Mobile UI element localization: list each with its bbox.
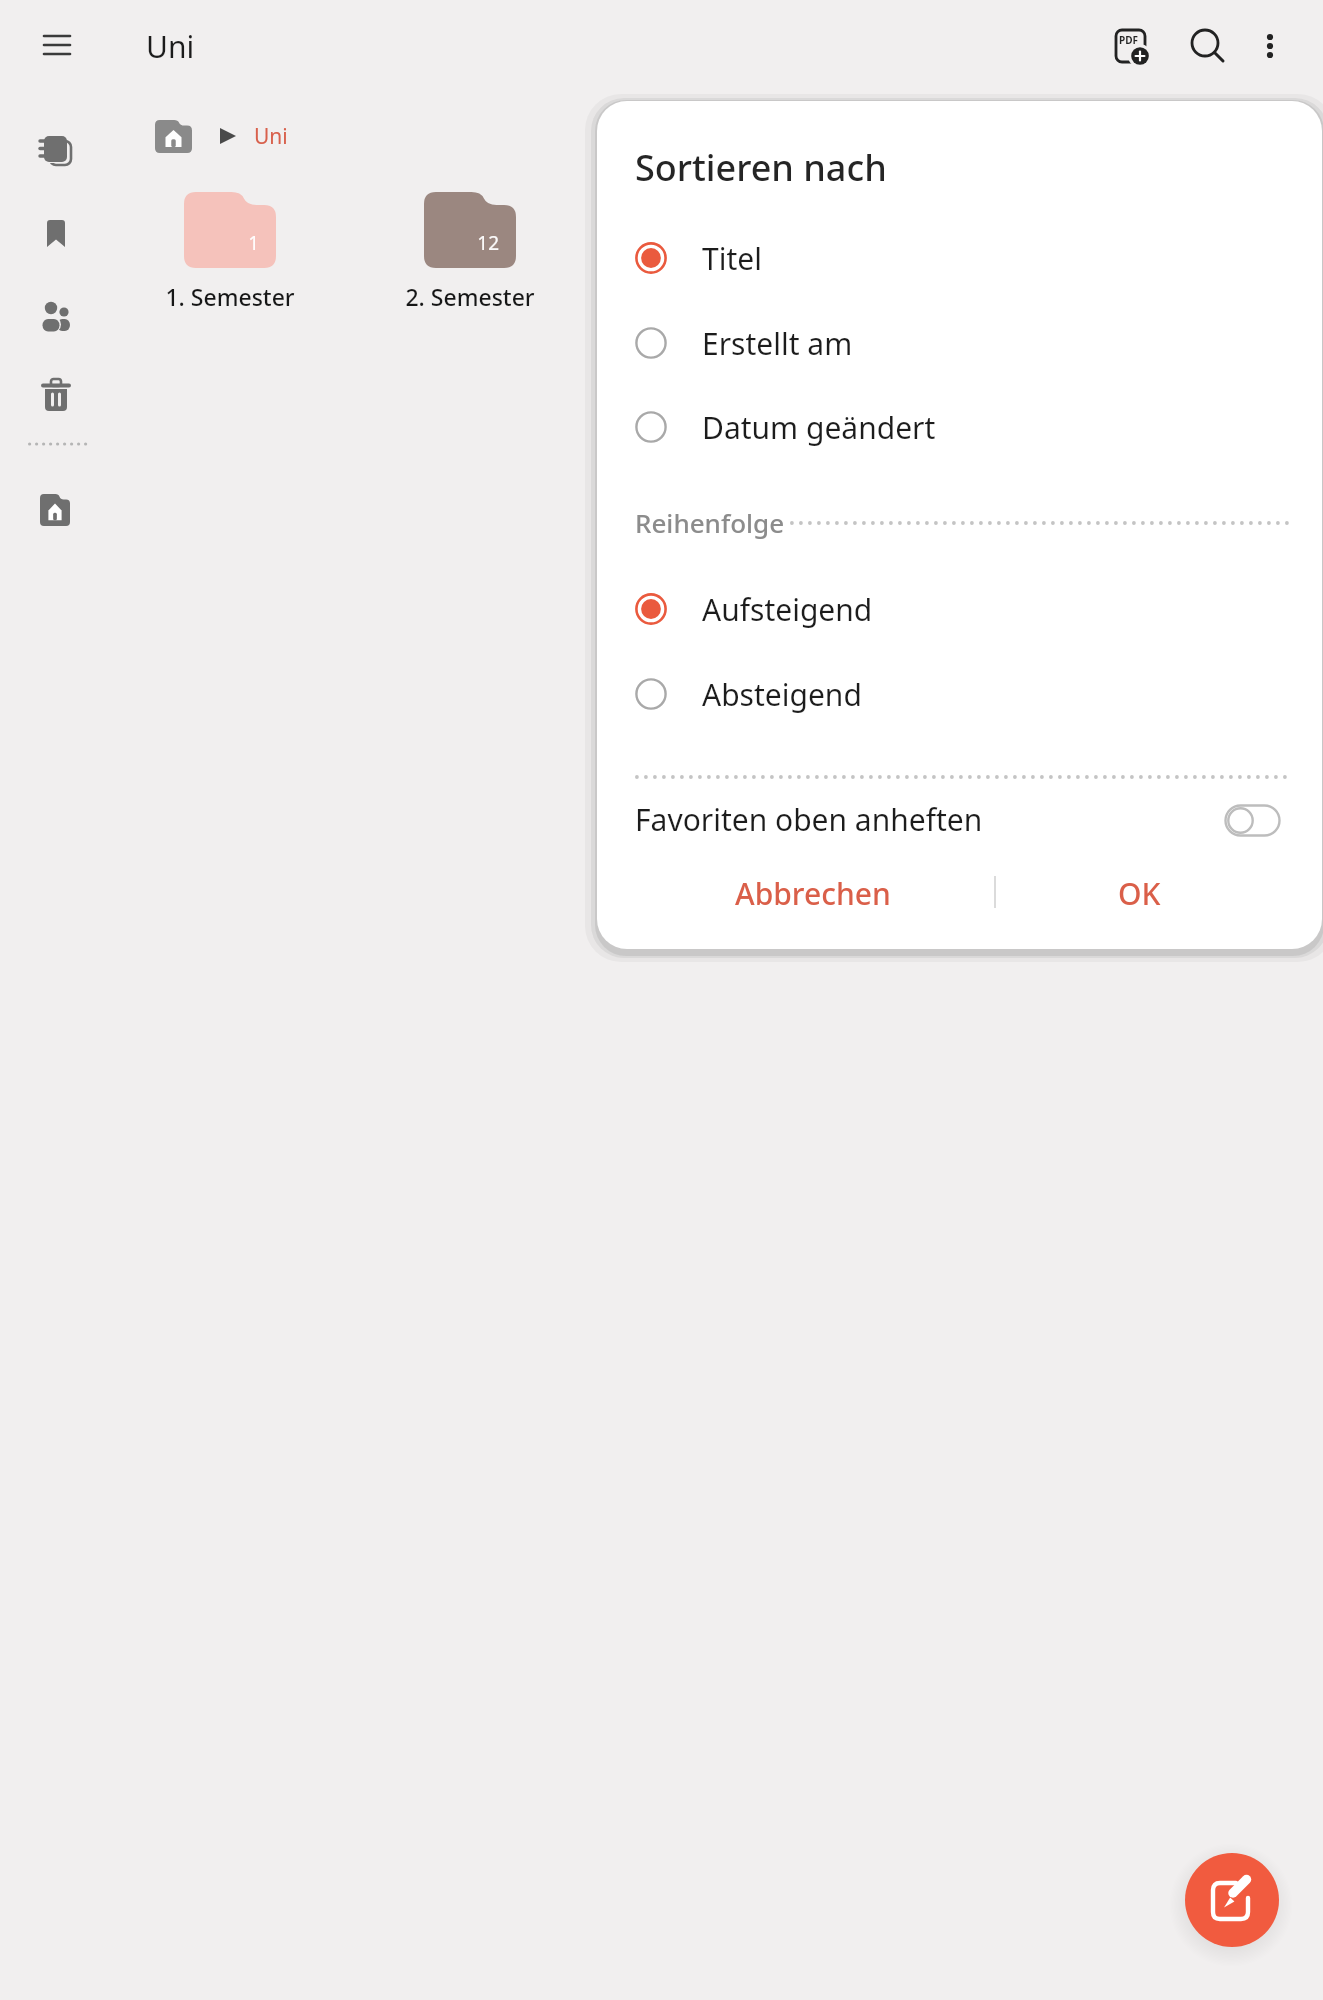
staticText: PDF [1119,33,1139,47]
staticText: Absteigend [702,674,862,715]
button[interactable]: Datum geändert [597,386,1157,468]
staticText: Erstellt am [702,323,853,364]
button[interactable]: OK [1024,858,1254,928]
button[interactable]: Absteigend [597,653,1157,735]
button[interactable]: Erstellt am [597,302,1157,384]
button[interactable] [28,206,84,262]
button[interactable] [1184,22,1230,68]
button[interactable] [28,124,84,180]
staticText: Sortieren nach [635,143,887,192]
button[interactable]: 1 [150,186,310,314]
button[interactable]: Abbrechen [698,858,928,928]
button[interactable]: 12 [390,186,550,314]
button[interactable] [1250,22,1292,68]
staticText: Uni [254,122,288,151]
button[interactable] [28,368,84,424]
staticText: Abbrechen [735,873,891,914]
staticText: Titel [702,238,762,279]
button[interactable] [32,22,82,68]
button[interactable]: Aufsteigend [597,568,1157,650]
staticText: OK [1118,873,1161,914]
staticText: Datum geändert [702,407,936,448]
button[interactable]: PDF [1110,24,1158,70]
staticText: Reihenfolge [635,505,785,540]
button[interactable]: Uni [140,108,340,164]
staticText: Aufsteigend [702,589,873,630]
staticText: Uni [146,26,195,67]
staticText: 2. Semester [390,281,550,312]
staticText: Favoriten oben anheften [635,799,983,840]
button[interactable]: Titel [597,217,1157,299]
button[interactable] [28,290,84,346]
staticText: 1. Semester [150,281,310,312]
staticText: 1 [180,230,259,256]
button[interactable] [36,490,74,530]
staticText: 12 [420,230,499,256]
button[interactable]: Favoriten oben anheften [597,781,1322,859]
button[interactable] [1185,1853,1279,1947]
